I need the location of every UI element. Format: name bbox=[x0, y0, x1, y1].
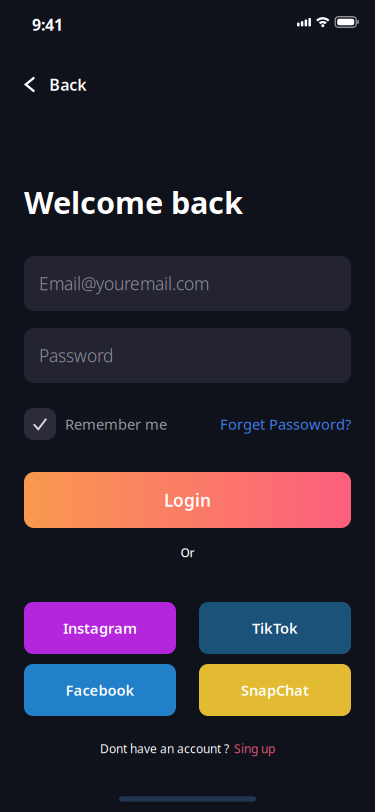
button[interactable]: Instagram bbox=[24, 602, 176, 654]
staticText: Password bbox=[39, 344, 113, 367]
button[interactable]: Facebook bbox=[24, 664, 176, 716]
button[interactable]: Forget Passoword? bbox=[220, 414, 351, 434]
staticText: Welcome back bbox=[24, 182, 243, 222]
staticText: Facebook bbox=[65, 680, 134, 700]
staticText: Or bbox=[180, 544, 194, 560]
staticText: Email@youremail.com bbox=[39, 272, 209, 295]
staticText: Login bbox=[164, 488, 211, 511]
staticText: Instagram bbox=[63, 618, 137, 638]
button[interactable]: Sing up bbox=[234, 740, 275, 756]
button[interactable]: SnapChat bbox=[199, 664, 351, 716]
button[interactable]: TikTok bbox=[199, 602, 351, 654]
staticText: Sing up bbox=[234, 740, 275, 756]
staticText: Forget Passoword? bbox=[220, 414, 351, 434]
button[interactable]: Remember me bbox=[24, 408, 167, 440]
staticText: Dont have an account ? bbox=[100, 740, 229, 756]
staticText: Remember me bbox=[65, 414, 167, 434]
staticText: SnapChat bbox=[241, 680, 309, 700]
staticText: 9:41 bbox=[32, 14, 63, 35]
button[interactable]: Login bbox=[24, 472, 351, 528]
button[interactable]: Back bbox=[26, 66, 86, 102]
staticText: Back bbox=[49, 74, 86, 95]
staticText: TikTok bbox=[252, 618, 298, 638]
